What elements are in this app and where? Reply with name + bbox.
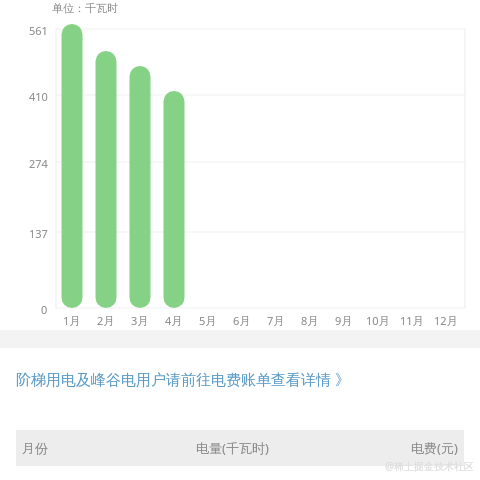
staticText: 6月 — [233, 313, 251, 328]
staticText: 电费(元) — [411, 439, 458, 457]
staticText: 月份 — [22, 440, 48, 456]
staticText: @稀土掘金技术社区 — [385, 459, 474, 473]
staticText: 2月 — [97, 313, 115, 328]
staticText: 9月 — [335, 313, 353, 328]
staticText: 0 — [41, 302, 48, 317]
staticText: 137 — [29, 226, 48, 241]
staticText: 11月 — [400, 313, 424, 328]
staticText: 4月 — [165, 313, 183, 328]
staticText: 1月 — [63, 313, 81, 328]
staticText: 10月 — [366, 313, 390, 328]
staticText: 561 — [29, 23, 48, 38]
staticText: 3月 — [131, 313, 149, 328]
staticText: 8月 — [301, 313, 319, 328]
staticText: 阶梯用电及峰谷电用户请前往电费账单查看详情 》 — [16, 369, 350, 389]
button[interactable]: 阶梯用电及峰谷电用户请前往电费账单查看详情 — [0, 348, 480, 410]
staticText: 274 — [29, 156, 48, 171]
staticText: 7月 — [267, 313, 285, 328]
staticText: 12月 — [434, 313, 458, 328]
staticText: 电量(千瓦时) — [196, 439, 269, 457]
staticText: 5月 — [199, 313, 217, 328]
staticText: 410 — [29, 89, 48, 104]
staticText: 单位：千瓦时 — [52, 1, 118, 15]
